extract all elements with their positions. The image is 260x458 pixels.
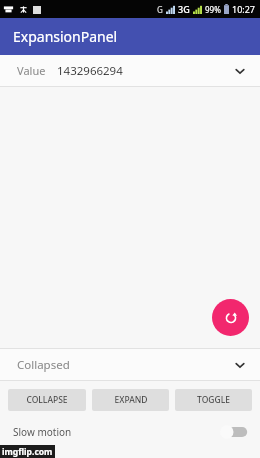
staticText: Value <box>17 63 46 78</box>
staticText: 10:27 <box>232 3 256 15</box>
staticText: ExpansionPanel <box>13 27 118 46</box>
button[interactable]: Slow motion <box>0 419 260 445</box>
staticText: 99% <box>205 4 221 15</box>
staticText: TOGGLE <box>197 394 230 406</box>
button[interactable]: Refresh <box>212 299 249 336</box>
button[interactable]: Collapsed <box>0 349 260 380</box>
staticText: Slow motion <box>13 425 72 439</box>
button[interactable]: COLLAPSE <box>8 389 86 411</box>
button[interactable]: EXPAND <box>92 389 169 411</box>
staticText: COLLAPSE <box>26 394 68 406</box>
staticText: 3G <box>178 3 190 15</box>
staticText: imgflip.com <box>2 446 53 457</box>
staticText: G <box>157 4 163 15</box>
staticText: 1432966294 <box>57 63 123 79</box>
button[interactable]: TOGGLE <box>175 389 252 411</box>
staticText: EXPAND <box>114 394 148 406</box>
staticText: Collapsed <box>17 357 70 373</box>
button[interactable]: Value <box>0 55 260 86</box>
